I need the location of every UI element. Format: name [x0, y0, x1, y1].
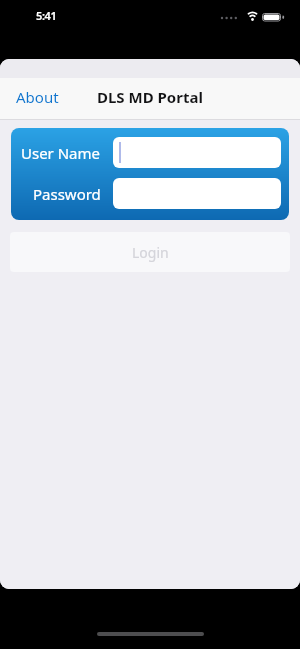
button[interactable]: Login [10, 232, 290, 272]
staticText: Login [132, 243, 169, 262]
staticText: Password [33, 184, 101, 204]
staticText: DLS MD Portal [97, 87, 203, 107]
staticText: User Name [21, 143, 101, 163]
staticText: 5:41 [36, 8, 57, 23]
button[interactable]: About [0, 83, 59, 111]
button[interactable] [113, 178, 281, 209]
staticText: About [16, 87, 59, 107]
button[interactable] [113, 137, 281, 168]
